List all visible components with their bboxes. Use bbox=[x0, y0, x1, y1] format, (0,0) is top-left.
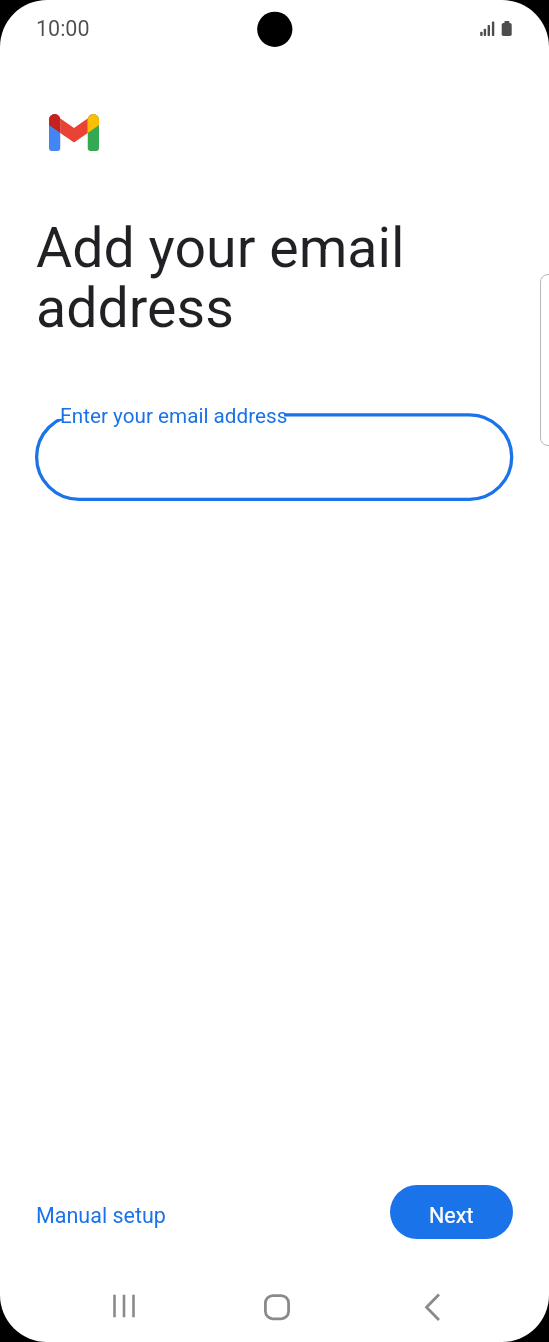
staticText: Enter your email address bbox=[60, 404, 288, 428]
button[interactable]: Back bbox=[388, 1280, 476, 1342]
staticText: Manual setup bbox=[36, 1203, 166, 1228]
staticText: Add your email address bbox=[36, 216, 405, 340]
staticText: 10:00 bbox=[36, 16, 90, 41]
button[interactable]: Next bbox=[390, 1185, 513, 1239]
button[interactable]: Recent apps bbox=[80, 1280, 168, 1342]
button[interactable]: Home bbox=[233, 1280, 321, 1342]
staticText: Next bbox=[429, 1203, 474, 1228]
button[interactable]: Manual setup bbox=[23, 1191, 179, 1234]
button[interactable]: Enter your email address bbox=[36, 400, 516, 500]
